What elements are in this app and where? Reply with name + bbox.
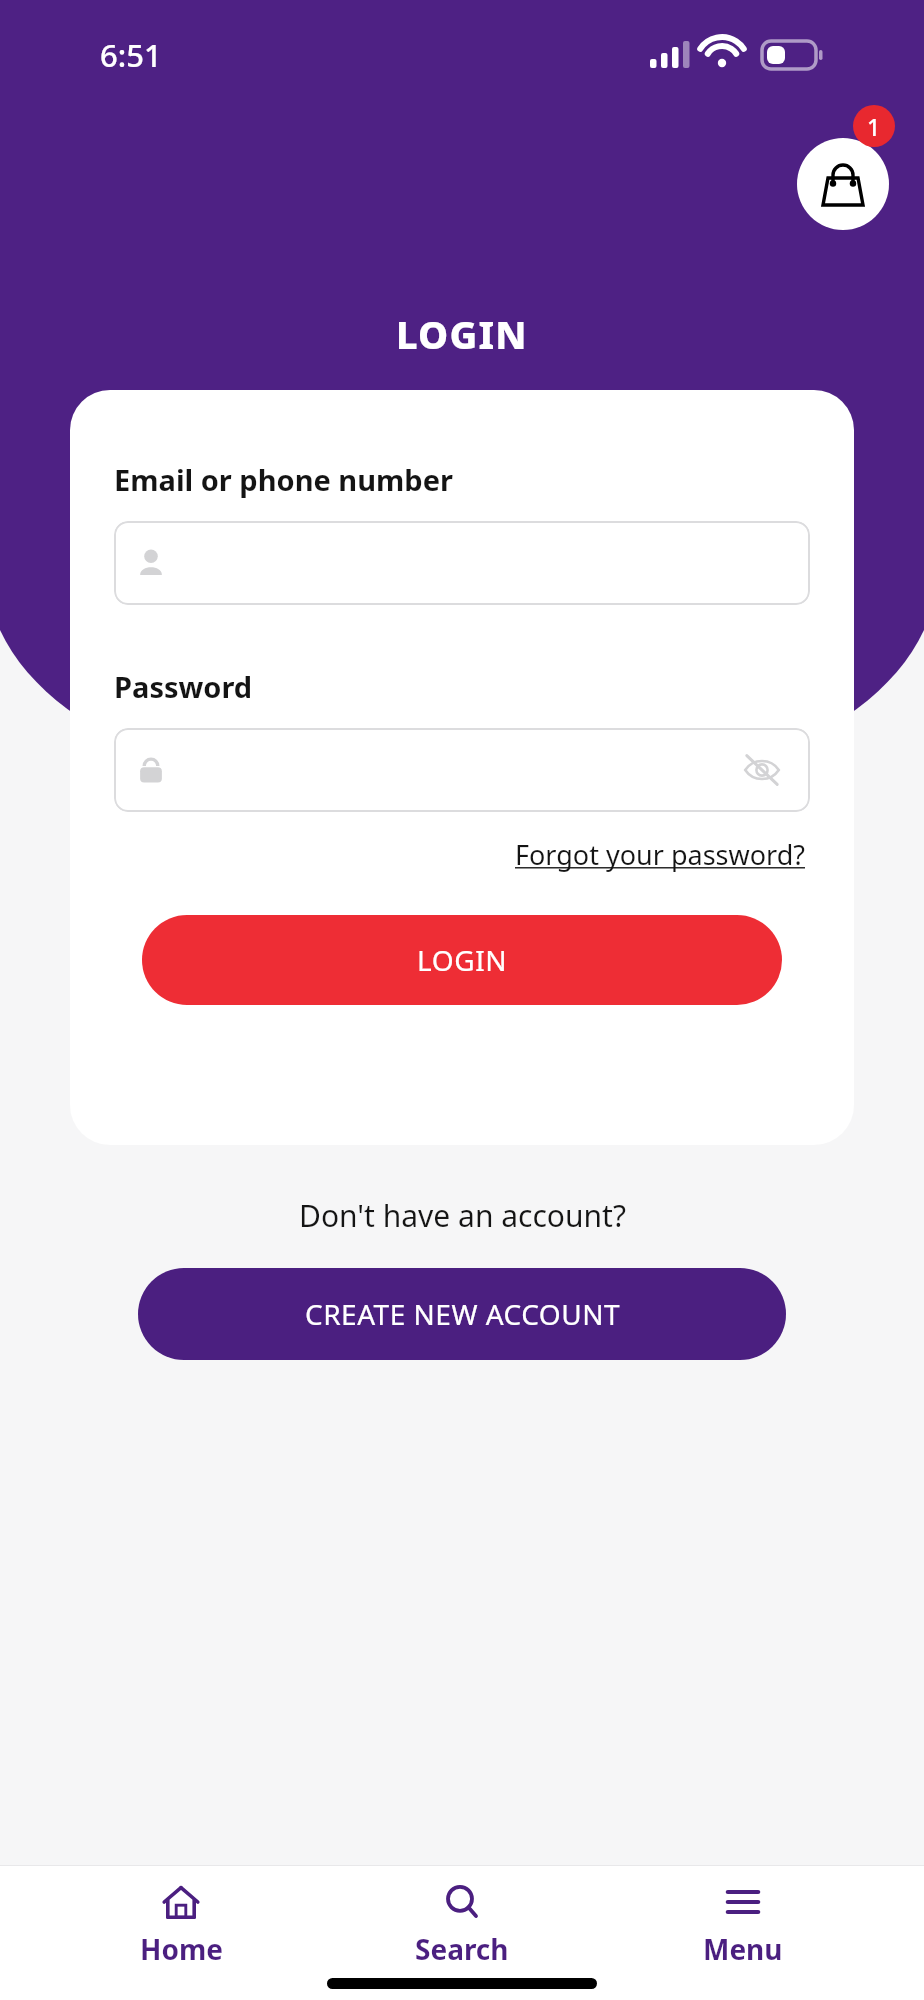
staticText: LOGIN <box>396 308 528 360</box>
staticText: 6:51 <box>100 34 162 76</box>
staticText: CREATE NEW ACCOUNT <box>305 1295 620 1333</box>
staticText: Don't have an account? <box>299 1195 626 1236</box>
button[interactable]: Shopping bag <box>797 138 889 230</box>
button[interactable] <box>114 521 810 605</box>
button[interactable]: Search <box>362 1866 562 1966</box>
button[interactable]: Home <box>81 1866 281 1966</box>
button[interactable]: LOGIN <box>142 915 782 1005</box>
staticText: Home <box>140 1930 223 1966</box>
staticText: Email or phone number <box>114 460 453 499</box>
button[interactable]: Forgot your password? <box>511 832 810 877</box>
button[interactable]: Show password <box>734 742 790 798</box>
staticText: Search <box>415 1930 509 1966</box>
staticText: 1 <box>867 111 881 142</box>
staticText: Password <box>114 667 253 706</box>
staticText: LOGIN <box>417 941 508 979</box>
staticText: Menu <box>703 1930 783 1966</box>
button[interactable]: Menu <box>643 1866 843 1966</box>
button[interactable]: CREATE NEW ACCOUNT <box>138 1268 786 1360</box>
button[interactable]: Show password <box>114 728 810 812</box>
